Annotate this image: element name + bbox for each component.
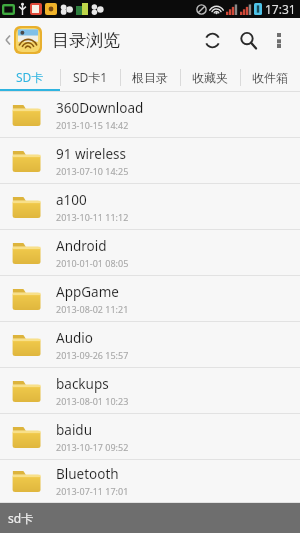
button[interactable]: SD卡 — [0, 62, 60, 92]
staticText: 2013-08-01 10:23 — [56, 395, 129, 407]
staticText: 根目录 — [132, 70, 168, 85]
staticText: 收藏夹 — [192, 70, 228, 85]
button[interactable]: Android — [0, 230, 300, 276]
button[interactable]: 360Download — [0, 92, 300, 138]
staticText: 目录浏览 — [52, 30, 120, 51]
staticText: 2013-09-26 15:57 — [56, 349, 129, 361]
staticText: 收件箱 — [252, 70, 288, 85]
button[interactable]: AppGame — [0, 276, 300, 322]
staticText: SD卡1 — [73, 69, 108, 85]
staticText: Android — [56, 237, 107, 255]
staticText: 91 wireless — [56, 145, 126, 163]
staticText: 2010-01-01 08:05 — [56, 257, 129, 269]
staticText: Audio — [56, 329, 93, 347]
staticText: Bluetooth — [56, 465, 119, 483]
button[interactable]: Up — [2, 26, 44, 54]
button[interactable]: SD卡1 — [60, 62, 120, 92]
button[interactable]: 91 wireless — [0, 138, 300, 184]
staticText: 17:31 — [265, 1, 296, 17]
staticText: 2013-10-15 14:42 — [56, 119, 129, 131]
staticText: SD卡 — [16, 69, 44, 85]
button[interactable]: 收件箱 — [240, 62, 300, 92]
button[interactable]: 收藏夹 — [180, 62, 240, 92]
staticText: 2013-10-17 09:52 — [56, 441, 129, 453]
button[interactable]: a100 — [0, 184, 300, 230]
button[interactable]: baidu — [0, 414, 300, 460]
staticText: 2013-07-11 17:01 — [56, 485, 129, 497]
staticText: backups — [56, 375, 109, 393]
button[interactable]: Search — [230, 22, 266, 58]
staticText: 2013-08-02 11:21 — [56, 303, 129, 315]
staticText: sd卡 — [8, 510, 34, 526]
staticText: baidu — [56, 421, 93, 439]
button[interactable]: More options — [266, 27, 292, 53]
staticText: AppGame — [56, 283, 119, 301]
staticText: a100 — [56, 191, 87, 209]
button[interactable]: Refresh — [194, 22, 230, 58]
staticText: 2013-10-11 11:12 — [56, 211, 129, 223]
button[interactable]: 根目录 — [120, 62, 180, 92]
button[interactable]: Bluetooth — [0, 460, 300, 503]
button[interactable]: backups — [0, 368, 300, 414]
button[interactable]: Audio — [0, 322, 300, 368]
staticText: 2013-07-10 14:25 — [56, 165, 129, 177]
staticText: 360Download — [56, 99, 144, 117]
